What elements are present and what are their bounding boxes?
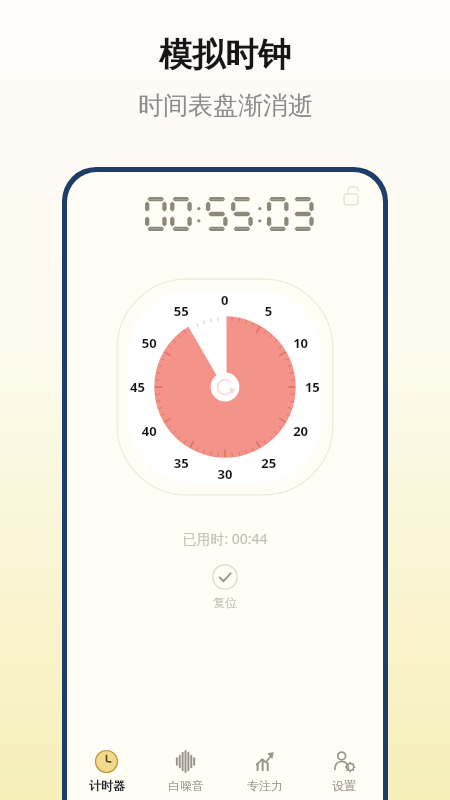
staticText: 白噪音 xyxy=(168,778,204,793)
staticText: 复位 xyxy=(213,595,237,610)
staticText: 计时器 xyxy=(89,778,125,793)
staticText: 设置 xyxy=(332,778,356,793)
staticText: 专注力 xyxy=(247,778,283,793)
staticText: 时间表盘渐消逝 xyxy=(138,90,313,121)
button[interactable]: 设置 xyxy=(304,741,383,793)
button[interactable]: Lock xyxy=(339,182,369,212)
staticText: 模拟时钟 xyxy=(159,34,291,76)
button[interactable]: 专注力 xyxy=(225,741,304,793)
button[interactable]: 白噪音 xyxy=(146,741,225,793)
staticText: 已用时: 00:44 xyxy=(182,529,268,548)
button[interactable]: 复位 xyxy=(202,562,248,612)
button[interactable]: Timer dial xyxy=(109,271,341,503)
button[interactable]: 计时器 xyxy=(67,741,146,793)
